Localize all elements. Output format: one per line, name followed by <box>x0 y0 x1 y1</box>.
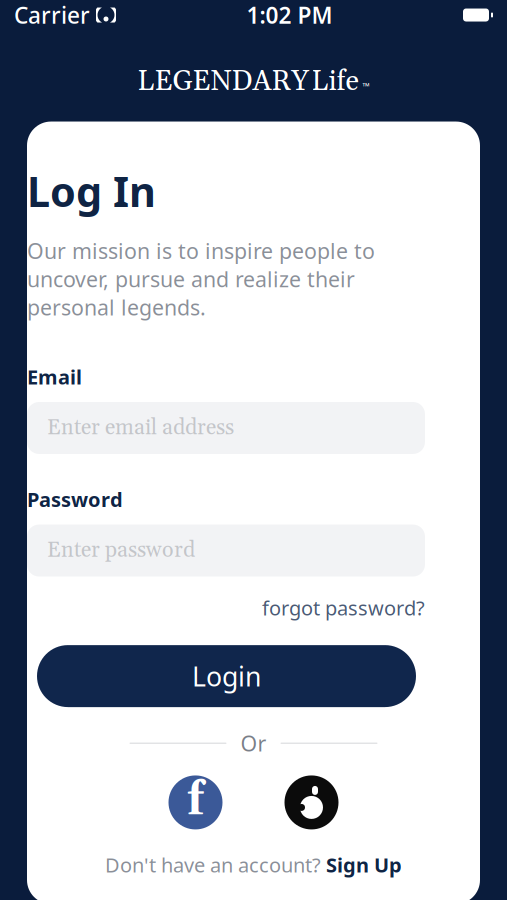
staticText: Life <box>311 64 359 99</box>
staticText: Enter email address <box>47 414 234 441</box>
staticText: Enter password <box>47 537 195 564</box>
button[interactable]: Don't have an account? <box>27 847 480 882</box>
staticText: Don't have an account? <box>105 851 321 878</box>
staticText: Password <box>27 486 123 513</box>
staticText: 1:02 PM <box>246 0 332 30</box>
button[interactable]: Sign in with Facebook <box>168 775 222 829</box>
staticText: LEGENDARY <box>137 64 308 99</box>
staticText: forgot password? <box>262 594 425 621</box>
staticText: Sign Up <box>326 851 402 878</box>
staticText: Or <box>240 729 266 757</box>
staticText: f <box>186 772 204 830</box>
staticText: Carrier <box>14 0 90 30</box>
staticText: Login <box>192 658 261 694</box>
staticText: ™ <box>362 80 369 93</box>
staticText: Our mission is to inspire people to unco… <box>27 236 375 321</box>
button[interactable]: forgot password? <box>27 588 425 627</box>
button[interactable]: Login <box>37 645 416 707</box>
staticText: Email <box>27 363 82 390</box>
button[interactable]: Sign in with Apple <box>284 775 338 829</box>
staticText: Log In <box>27 164 156 218</box>
